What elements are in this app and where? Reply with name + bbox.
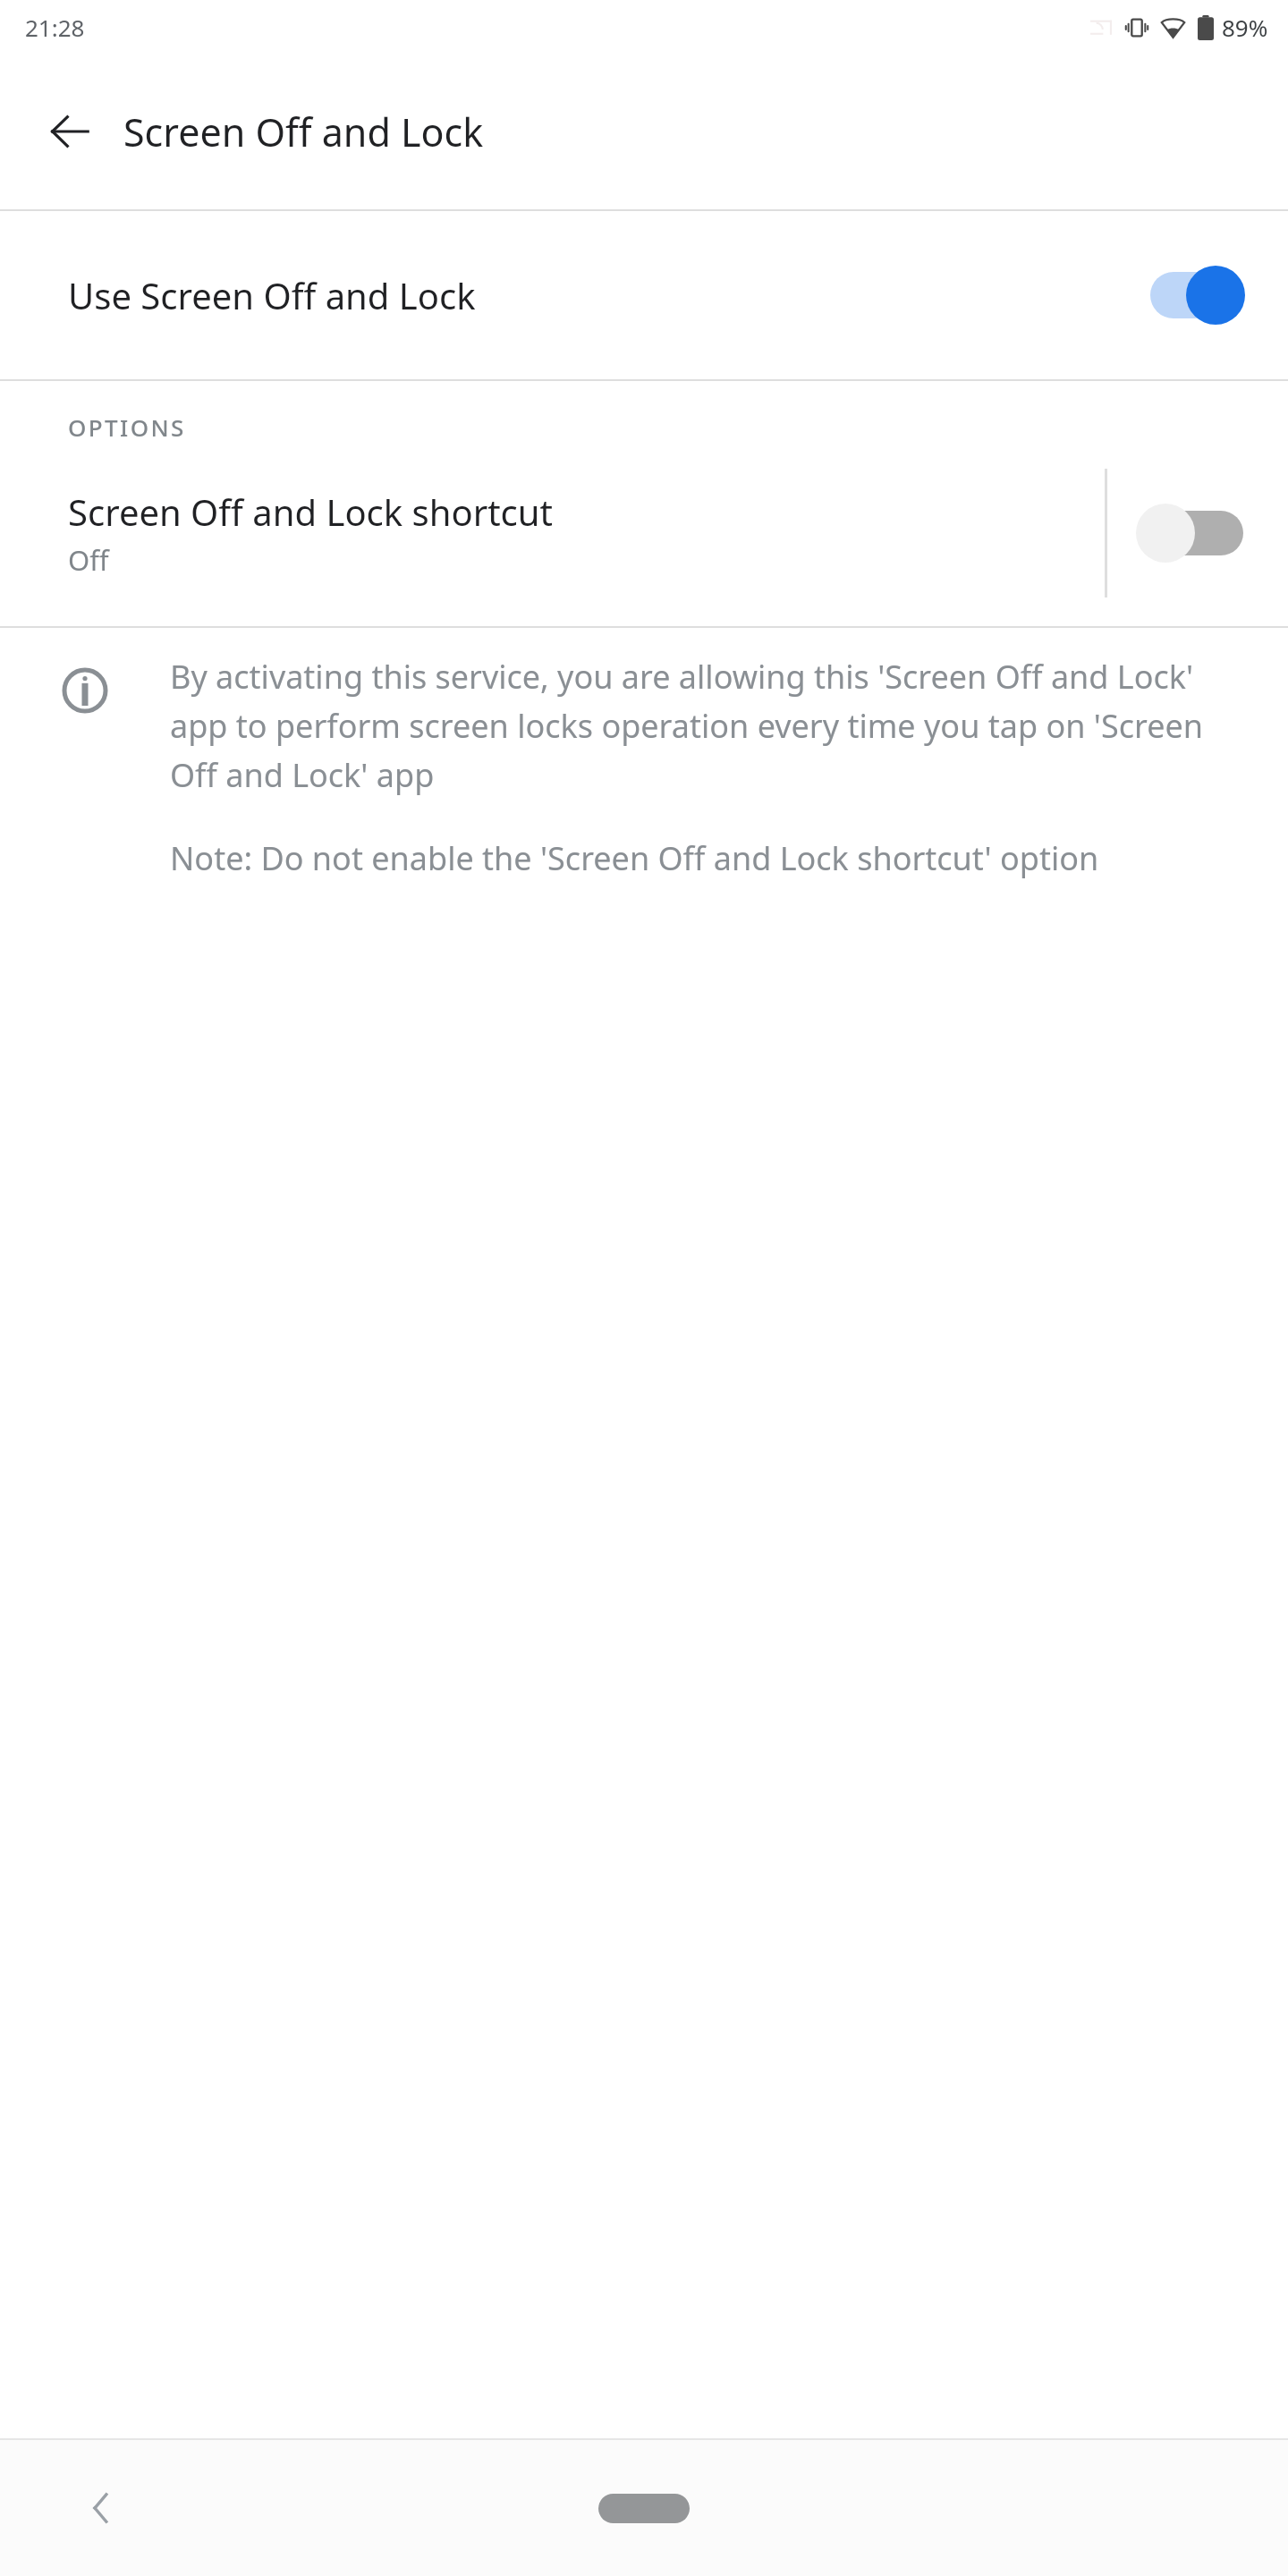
staticText: Screen Off and Lock shortcut	[68, 487, 553, 536]
button[interactable]: Back	[39, 101, 100, 162]
staticText: 89%	[1222, 12, 1268, 43]
staticText: By activating this service, you are allo…	[170, 655, 1234, 797]
staticText: 21:28	[25, 12, 85, 43]
staticText: Screen Off and Lock	[123, 106, 484, 158]
button[interactable]: Screen Off and Lock shortcut	[0, 450, 1105, 616]
staticText: OPTIONS	[68, 411, 186, 443]
staticText: Off	[68, 541, 109, 579]
button[interactable]: Home	[581, 2477, 707, 2539]
staticText: Use Screen Off and Lock	[68, 271, 1134, 319]
button[interactable]: Screen Off and Lock shortcut toggle	[1107, 450, 1288, 616]
button[interactable]: Back	[70, 2476, 134, 2540]
button[interactable]: Use Screen Off and Lock	[0, 211, 1288, 379]
staticText: Note: Do not enable the 'Screen Off and …	[170, 836, 1099, 880]
